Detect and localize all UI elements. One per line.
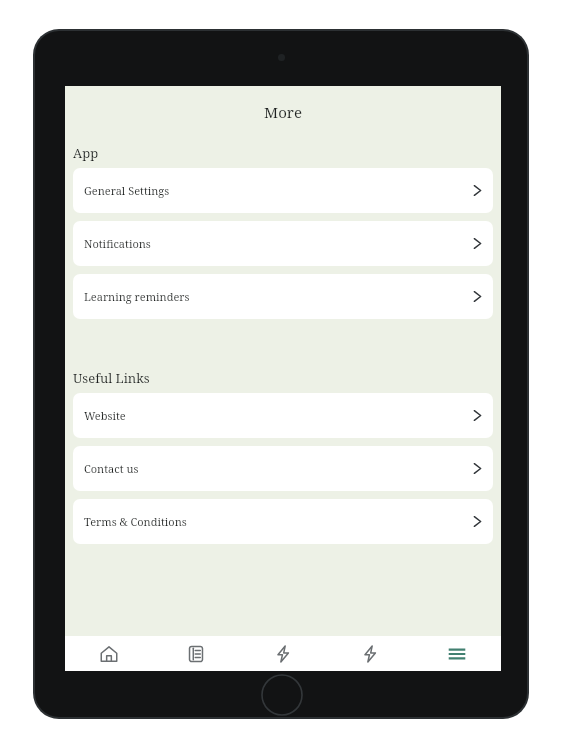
button[interactable]: Practice [326, 636, 413, 671]
button[interactable]: Contact us [73, 446, 493, 491]
staticText: Terms & Conditions [84, 514, 473, 529]
button[interactable]: Learning reminders [73, 274, 493, 319]
button[interactable]: Home [65, 636, 152, 671]
staticText: Website [84, 408, 473, 423]
staticText: Learning reminders [84, 289, 473, 304]
button[interactable]: Website [73, 393, 493, 438]
staticText: Useful Links [73, 369, 150, 387]
staticText: App [73, 144, 99, 162]
staticText: Notifications [84, 236, 473, 251]
staticText: Contact us [84, 461, 473, 476]
button[interactable]: Activity [239, 636, 326, 671]
button[interactable]: Articles [152, 636, 239, 671]
button[interactable]: Terms & Conditions [73, 499, 493, 544]
staticText: General Settings [84, 183, 473, 198]
button[interactable]: More [413, 636, 500, 671]
button[interactable]: General Settings [73, 168, 493, 213]
staticText: More [264, 102, 302, 122]
button[interactable]: Notifications [73, 221, 493, 266]
